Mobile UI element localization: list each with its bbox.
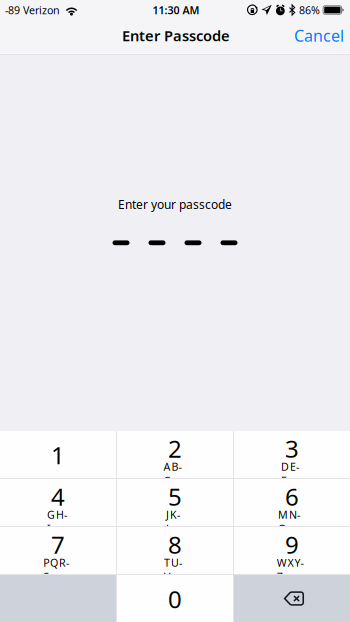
button[interactable]: 6 xyxy=(234,479,350,526)
button[interactable]: 8 xyxy=(117,527,233,574)
staticText: Enter Passcode xyxy=(122,26,230,45)
staticText: JKL xyxy=(166,507,184,522)
button[interactable]: Cancel xyxy=(285,17,350,56)
button[interactable]: 1 xyxy=(0,431,116,478)
staticText: 1 xyxy=(51,439,65,471)
staticText: 5 xyxy=(168,481,182,512)
staticText: DEF xyxy=(281,459,303,474)
staticText: 7 xyxy=(51,529,65,560)
staticText: 0 xyxy=(168,583,182,615)
button[interactable]: 9 xyxy=(234,527,350,574)
button[interactable]: Delete xyxy=(234,575,350,622)
button[interactable]: 3 xyxy=(234,431,350,478)
staticText: 3 xyxy=(285,433,299,464)
staticText: 86% xyxy=(299,3,320,17)
staticText: WXYZ xyxy=(277,555,307,570)
staticText: 4 xyxy=(51,481,65,512)
staticText: 9 xyxy=(285,529,299,560)
staticText: TUV xyxy=(164,555,186,570)
staticText: ABC xyxy=(164,459,186,474)
staticText: MNO xyxy=(278,507,306,522)
button[interactable]: 4 xyxy=(0,479,116,526)
staticText: 8 xyxy=(168,529,182,560)
button[interactable]: 0 xyxy=(117,575,233,622)
button[interactable]: 7 xyxy=(0,527,116,574)
staticText: 11:30 AM xyxy=(152,3,199,17)
button[interactable]: 2 xyxy=(117,431,233,478)
button[interactable]: 5 xyxy=(117,479,233,526)
staticText: -89 Verizon xyxy=(5,3,60,17)
staticText: 2 xyxy=(168,433,182,464)
staticText: GHI xyxy=(47,507,69,522)
staticText: Enter your passcode xyxy=(118,196,232,212)
staticText: 6 xyxy=(285,481,299,512)
staticText: PQRS xyxy=(43,555,73,570)
staticText: Cancel xyxy=(294,25,344,46)
